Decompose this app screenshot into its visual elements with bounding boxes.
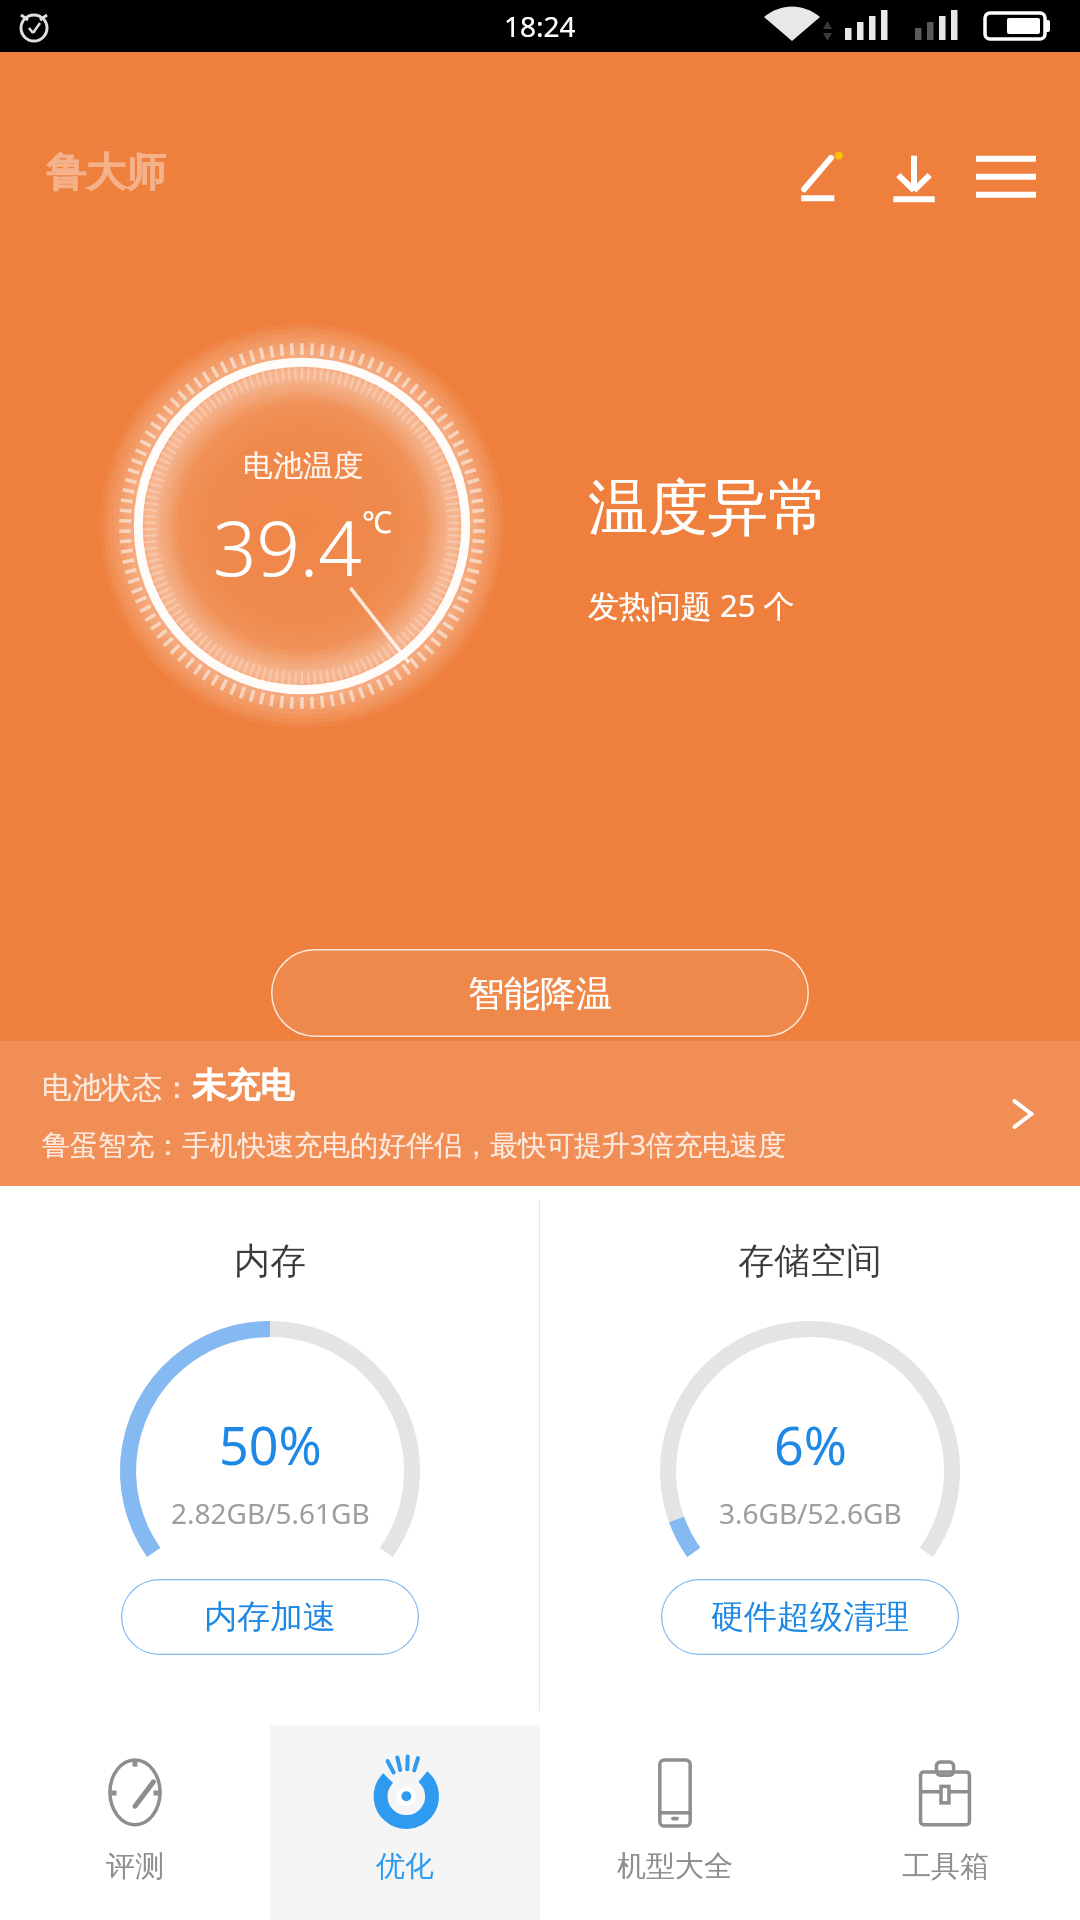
staticText: 温度异常 xyxy=(588,470,828,546)
staticText: 优化 xyxy=(376,1848,434,1885)
staticText: 未充电 xyxy=(192,1064,294,1107)
staticText: 存储空间 xyxy=(738,1238,882,1283)
button[interactable]: 硬件超级清理 xyxy=(661,1579,959,1655)
staticText: 内存加速 xyxy=(204,1596,336,1638)
staticText: 电池温度 xyxy=(243,447,363,485)
button[interactable]: 菜单 xyxy=(960,132,1052,224)
button[interactable]: 智能降温 xyxy=(271,949,809,1037)
staticText: 鲁大师 xyxy=(46,147,166,197)
button[interactable]: 下载 xyxy=(868,132,960,224)
button[interactable]: 机型大全 xyxy=(540,1725,810,1920)
button[interactable]: 编辑 xyxy=(776,132,868,224)
button[interactable]: 评测 xyxy=(0,1725,270,1920)
staticText: ℃ xyxy=(362,501,392,542)
staticText: 18:24 xyxy=(504,7,576,45)
staticText: 电池状态： xyxy=(42,1069,192,1107)
staticText: 鲁蛋智充：手机快速充电的好伴侣，最快可提升3倍充电速度 xyxy=(42,1125,787,1163)
staticText: 评测 xyxy=(106,1848,164,1885)
button[interactable]: 内存加速 xyxy=(121,1579,419,1655)
staticText: 发热问题 25 个 xyxy=(588,584,795,626)
staticText: 智能降温 xyxy=(468,971,612,1016)
button[interactable]: 电池状态： xyxy=(0,1041,1080,1186)
staticText: 机型大全 xyxy=(617,1848,733,1885)
staticText: 硬件超级清理 xyxy=(711,1596,909,1638)
staticText: 工具箱 xyxy=(902,1848,989,1885)
staticText: 内存 xyxy=(234,1238,306,1283)
staticText: 3.6GB/52.6GB xyxy=(719,1494,902,1532)
staticText: 6% xyxy=(774,1409,847,1480)
button[interactable]: 优化 xyxy=(270,1725,540,1920)
staticText: 50% xyxy=(219,1409,322,1480)
staticText: 2.82GB/5.61GB xyxy=(171,1494,370,1532)
button[interactable]: 工具箱 xyxy=(810,1725,1080,1920)
staticText: 39.4 xyxy=(213,495,362,599)
